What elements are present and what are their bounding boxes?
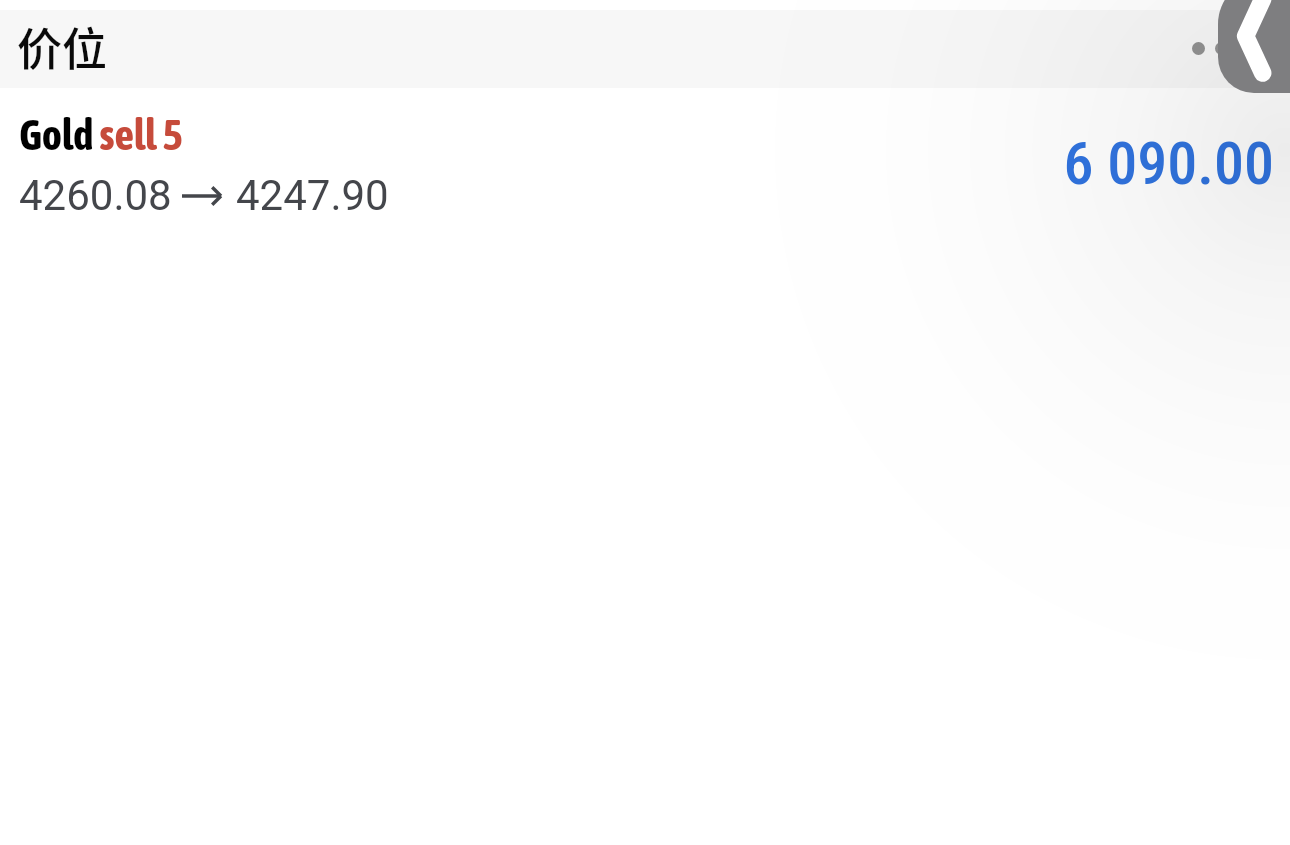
staticText: 4247.90	[236, 171, 389, 220]
button[interactable]: More options	[1168, 15, 1234, 81]
button[interactable]: Gold sell 5	[0, 88, 1290, 220]
staticText: Gold sell 5	[19, 110, 183, 159]
button[interactable]: Open navigation drawer	[1218, 0, 1290, 93]
staticText: 6 090.00	[0, 128, 1274, 198]
staticText: 4260.08	[19, 171, 172, 220]
staticText: 价位	[17, 14, 108, 79]
